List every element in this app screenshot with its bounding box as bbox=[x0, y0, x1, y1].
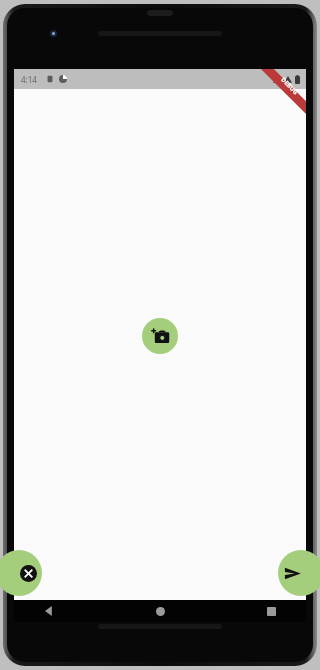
staticText: 4:14 bbox=[21, 74, 37, 85]
button[interactable]: Add a photo bbox=[142, 318, 178, 354]
button[interactable]: Send bbox=[278, 550, 320, 596]
button[interactable]: Recent apps bbox=[236, 600, 306, 622]
button[interactable]: Home bbox=[125, 600, 195, 622]
staticText: DEBUG bbox=[279, 76, 300, 96]
button[interactable]: Back bbox=[14, 600, 84, 622]
button[interactable]: Cancel bbox=[0, 550, 42, 596]
